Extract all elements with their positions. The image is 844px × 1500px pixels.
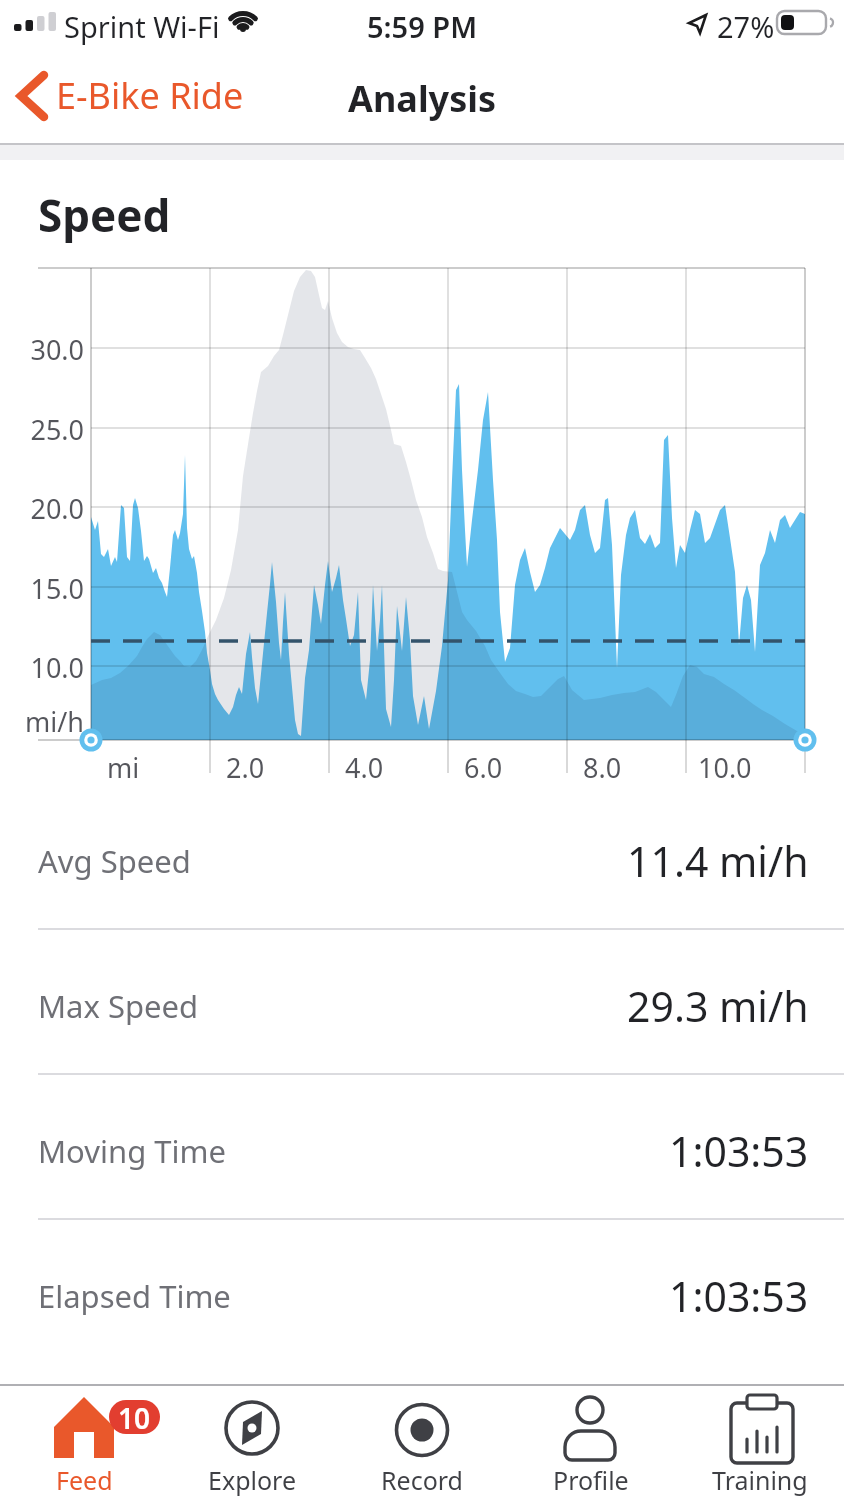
button[interactable]: Avg Speed [0, 816, 844, 906]
staticText: 5:59 PM [367, 7, 478, 46]
staticText: 30.0 [30, 331, 84, 368]
staticText: Elapsed Time [38, 1275, 231, 1317]
staticText: 10.0 [698, 749, 752, 786]
staticText: Record [381, 1463, 463, 1497]
staticText: 10.0 [30, 649, 84, 686]
staticText: 2.0 [226, 749, 265, 786]
staticText: mi/h [25, 703, 84, 740]
staticText: 15.0 [30, 570, 84, 607]
staticText: 10 [118, 1399, 151, 1434]
staticText: 29.3 mi/h [627, 978, 809, 1034]
button[interactable]: Feed [0, 1386, 168, 1500]
button[interactable]: Explore [168, 1386, 337, 1500]
staticText: mi [107, 749, 140, 786]
staticText: Speed [38, 185, 171, 245]
staticText: 25.0 [30, 411, 84, 448]
button[interactable]: Record [337, 1386, 506, 1500]
staticText: Max Speed [38, 985, 199, 1027]
staticText: Avg Speed [38, 840, 191, 882]
button[interactable]: Max Speed [0, 961, 844, 1051]
staticText: Analysis [348, 74, 497, 123]
button[interactable]: Profile [506, 1386, 675, 1500]
staticText: Profile [553, 1463, 629, 1497]
staticText: Sprint Wi-Fi [64, 7, 220, 46]
button[interactable]: Training [675, 1386, 844, 1500]
staticText: 20.0 [30, 490, 84, 527]
staticText: 11.4 mi/h [627, 833, 809, 889]
staticText: 27% [717, 7, 775, 46]
staticText: 8.0 [583, 749, 622, 786]
staticText: Feed [56, 1463, 113, 1497]
staticText: 1:03:53 [669, 1268, 809, 1324]
button[interactable]: Moving Time [0, 1106, 844, 1196]
staticText: Explore [208, 1463, 297, 1497]
staticText: 6.0 [464, 749, 503, 786]
staticText: 4.0 [345, 749, 384, 786]
button[interactable]: E-Bike Ride [10, 64, 260, 126]
staticText: 1:03:53 [669, 1123, 809, 1179]
staticText: Training [712, 1463, 808, 1497]
button[interactable]: Elapsed Time [0, 1251, 844, 1341]
staticText: E-Bike Ride [56, 71, 244, 120]
staticText: Moving Time [38, 1130, 226, 1172]
